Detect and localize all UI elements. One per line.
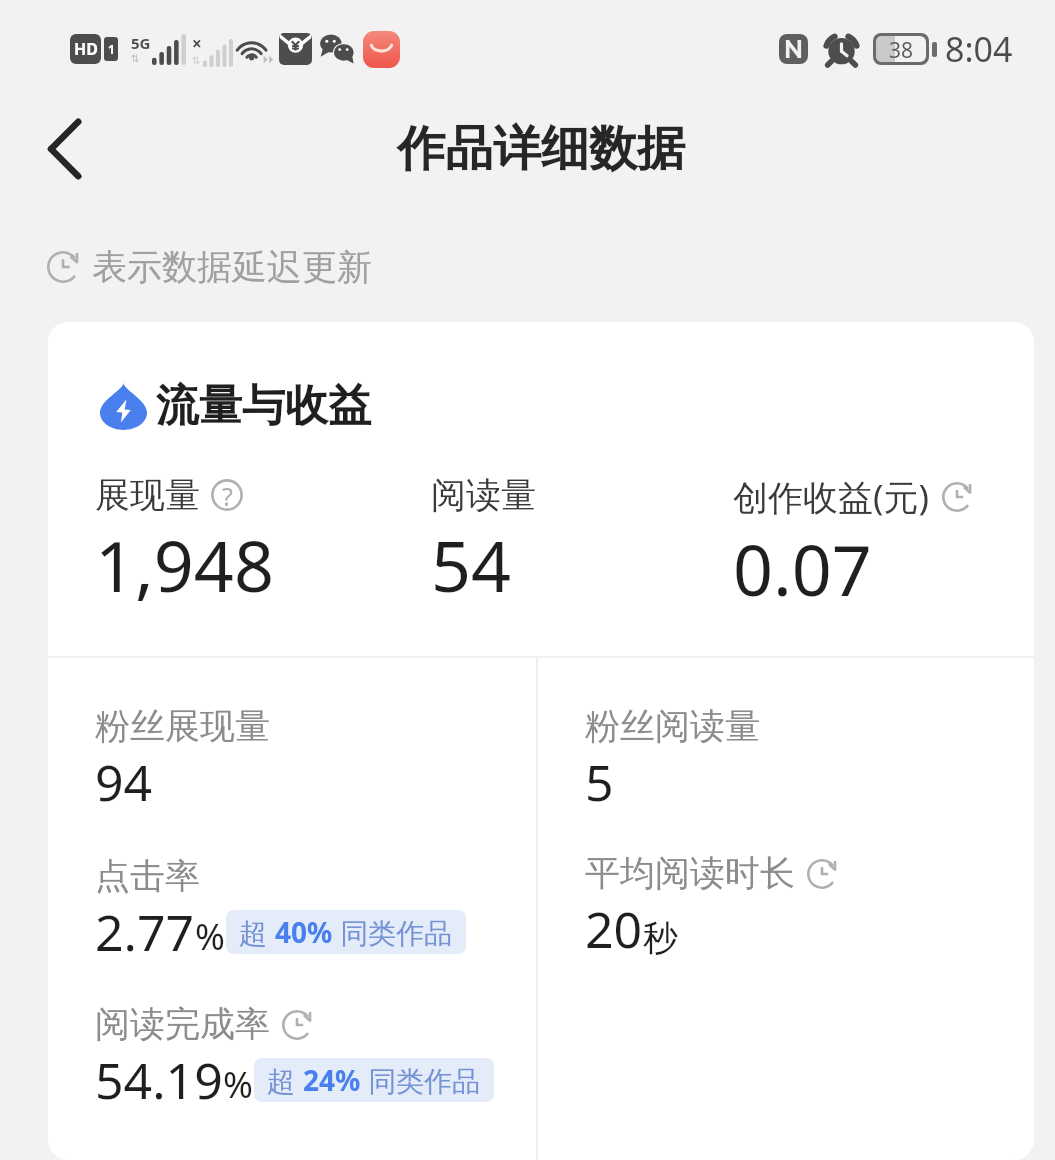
staticText: %: [223, 1060, 253, 1109]
staticText: 94: [95, 748, 153, 816]
staticText: 平均阅读时长: [585, 851, 795, 895]
staticText: 2.77: [95, 898, 195, 966]
staticText: 40%: [275, 913, 333, 951]
staticText: 20: [585, 895, 643, 963]
staticText: 同类作品: [333, 913, 453, 951]
staticText: 1,948: [95, 517, 274, 612]
staticText: 超: [239, 913, 275, 951]
button[interactable]: 粉丝阅读量: [538, 658, 1034, 963]
staticText: 38: [889, 36, 914, 62]
button[interactable]: Back: [14, 99, 114, 199]
staticText: 超: [267, 1061, 303, 1099]
staticText: 54.19: [95, 1046, 223, 1114]
staticText: %: [195, 912, 225, 961]
button[interactable]: 粉丝展现量: [48, 658, 536, 1160]
staticText: 创作收益(元): [733, 473, 930, 521]
staticText: 同类作品: [361, 1061, 481, 1099]
staticText: 粉丝阅读量: [585, 704, 760, 748]
staticText: 0.07: [733, 521, 872, 616]
staticText: 粉丝展现量: [95, 704, 270, 748]
staticText: 5: [585, 748, 614, 816]
staticText: ⇅: [131, 53, 140, 65]
staticText: 展现量: [95, 473, 200, 517]
staticText: 流量与收益: [156, 379, 371, 433]
staticText: ⇅: [192, 55, 201, 67]
staticText: HD: [74, 38, 98, 60]
staticText: 点击率: [95, 854, 200, 898]
staticText: 8:04: [945, 26, 1013, 72]
staticText: 5G: [131, 33, 151, 53]
staticText: 24%: [303, 1061, 361, 1099]
staticText: 1: [108, 41, 115, 57]
staticText: 作品详细数据: [397, 119, 685, 179]
button[interactable]: 创作收益(元): [733, 473, 1034, 616]
staticText: ×: [192, 32, 202, 55]
staticText: 54: [431, 517, 512, 612]
staticText: 阅读量: [431, 473, 536, 517]
staticText: ?: [222, 479, 233, 511]
button[interactable]: 展现量: [48, 473, 431, 612]
staticText: 秒: [643, 916, 678, 960]
staticText: 阅读完成率: [95, 1002, 270, 1046]
button[interactable]: 阅读量: [431, 473, 733, 612]
staticText: 表示数据延迟更新: [92, 245, 372, 289]
